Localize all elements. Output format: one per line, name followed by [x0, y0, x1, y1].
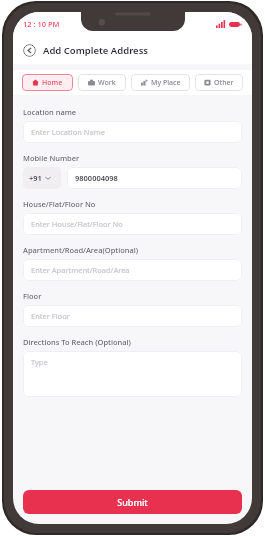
staticText: 9800004098 — [75, 173, 118, 183]
staticText: Add Complete Address — [43, 44, 149, 57]
staticText: Other — [214, 78, 234, 88]
button[interactable]: Enter Floor — [23, 305, 242, 327]
staticText: Type — [31, 357, 48, 367]
staticText: Enter Apartment/Road/Area — [31, 265, 130, 275]
button[interactable]: Enter Location Name — [23, 121, 242, 143]
staticText: Enter Floor — [31, 311, 70, 321]
button[interactable]: Other — [195, 74, 243, 91]
staticText: Apartment/Road/Area(Optional) — [23, 245, 139, 255]
button[interactable]: Submit — [23, 490, 242, 514]
staticText: Location name — [23, 107, 77, 117]
staticText: Submit — [117, 496, 148, 508]
button[interactable]: +91 — [23, 167, 61, 189]
button[interactable]: Home — [22, 74, 73, 91]
staticText: Directions To Reach (Optional) — [23, 337, 131, 347]
button[interactable]: Back — [23, 44, 36, 57]
staticText: Floor — [23, 291, 42, 301]
staticText: Mobile Number — [23, 153, 80, 163]
staticText: Work — [98, 78, 116, 88]
staticText: Enter House/Flat/Floor No — [31, 219, 123, 229]
staticText: House/Flat/Floor No — [23, 199, 96, 209]
staticText: +91 — [29, 173, 42, 183]
button[interactable]: Enter House/Flat/Floor No — [23, 213, 242, 235]
staticText: My Place — [151, 78, 181, 88]
staticText: 12 : 10 PM — [23, 19, 60, 29]
staticText: Home — [42, 78, 63, 88]
button[interactable]: Work — [78, 74, 126, 91]
button[interactable]: 9800004098 — [67, 167, 242, 189]
button[interactable]: My Place — [131, 74, 190, 91]
button[interactable]: Enter Apartment/Road/Area — [23, 259, 242, 281]
button[interactable]: Type — [23, 351, 242, 397]
staticText: Enter Location Name — [31, 127, 105, 137]
